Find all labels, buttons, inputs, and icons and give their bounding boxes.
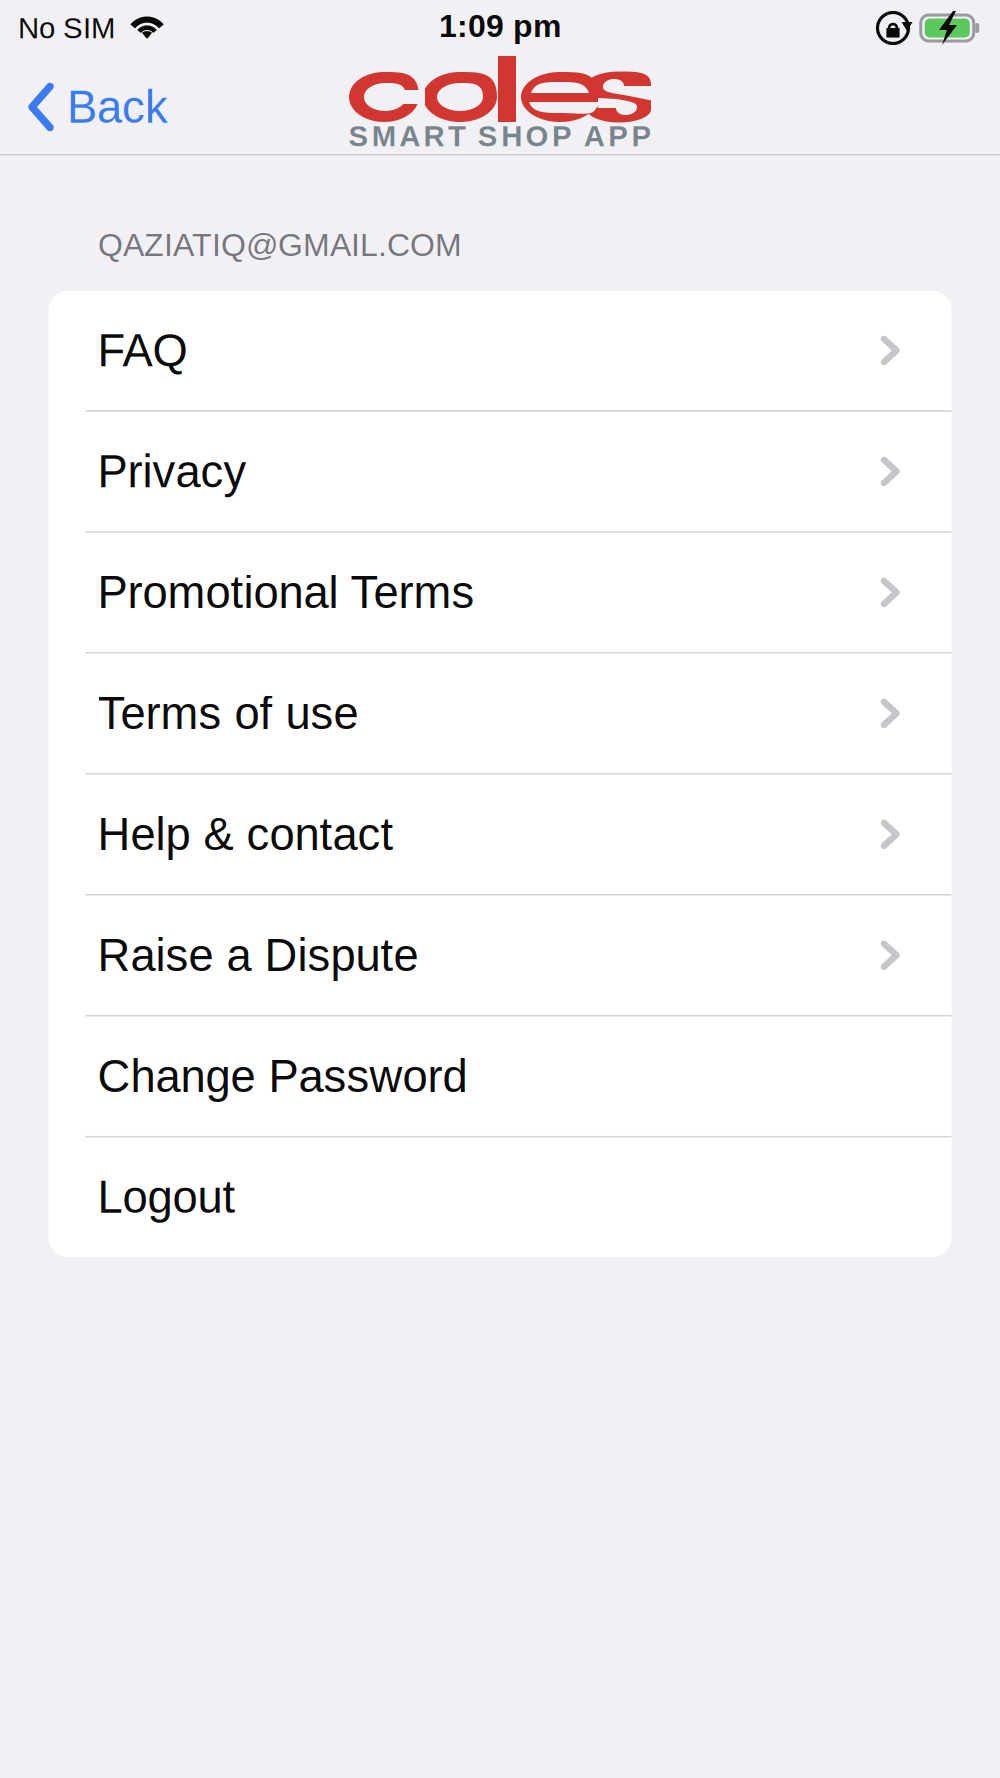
staticText: FAQ [97, 325, 187, 376]
staticText: Terms of use [97, 688, 358, 739]
staticText: Raise a Dispute [97, 930, 418, 980]
button[interactable]: Raise a Dispute [48, 895, 951, 1015]
staticText: M [372, 120, 396, 152]
staticText: 1:09 pm [439, 8, 561, 44]
button[interactable]: Help & contact [48, 774, 951, 894]
staticText: P [608, 120, 628, 152]
staticText: No SIM [18, 12, 115, 44]
staticText: Help & contact [97, 809, 393, 860]
staticText: A [399, 120, 420, 152]
staticText: QAZIATIQ@GMAIL.COM [98, 227, 462, 263]
staticText: R [424, 120, 445, 152]
button[interactable]: Change Password [48, 1016, 951, 1136]
staticText: S [478, 120, 498, 152]
staticText: Back [67, 82, 168, 132]
staticText: S [348, 120, 368, 152]
staticText: Privacy [97, 446, 246, 497]
staticText: Change Password [97, 1051, 467, 1101]
staticText: P [552, 120, 572, 152]
button[interactable]: Privacy [48, 412, 951, 531]
button[interactable]: Logout [48, 1137, 951, 1257]
button[interactable]: Promotional Terms [48, 533, 951, 652]
staticText: H [501, 120, 522, 152]
staticText: P [632, 120, 652, 152]
button[interactable]: FAQ [48, 291, 951, 410]
button[interactable]: Back [0, 58, 192, 156]
staticText: O [526, 120, 549, 152]
staticText: Logout [97, 1172, 235, 1222]
staticText: A [584, 120, 605, 152]
staticText: Promotional Terms [97, 567, 474, 618]
staticText: T [448, 120, 466, 152]
button[interactable]: Terms of use [48, 654, 951, 773]
